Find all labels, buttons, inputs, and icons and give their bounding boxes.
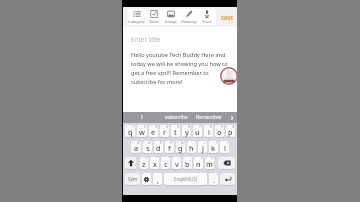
staticText: c xyxy=(164,159,168,169)
staticText: + xyxy=(204,141,206,145)
button[interactable]: Image xyxy=(162,9,180,25)
button[interactable]: English(US) xyxy=(164,173,207,185)
staticText: v xyxy=(175,159,179,169)
button[interactable]: 2 xyxy=(137,125,147,137)
staticText: " xyxy=(156,157,158,161)
button[interactable]: 4 xyxy=(160,125,169,137)
button[interactable]: $ xyxy=(154,141,163,153)
staticText: f xyxy=(168,143,171,153)
staticText: e xyxy=(151,127,156,137)
staticText: ) xyxy=(227,141,228,145)
staticText: Category xyxy=(128,19,145,24)
button[interactable]: Shift xyxy=(125,157,136,169)
button[interactable]: 9 xyxy=(215,125,224,137)
staticText: Enter title xyxy=(131,35,161,44)
staticText: d xyxy=(156,143,161,153)
staticText: p xyxy=(228,127,233,137)
staticText: Sym xyxy=(128,176,138,182)
staticText: Hello youtube Tech Buddy Here and today … xyxy=(131,51,234,86)
staticText: y xyxy=(185,127,189,137)
staticText: ! xyxy=(201,157,202,161)
staticText: : xyxy=(179,157,180,161)
staticText: . xyxy=(213,175,215,185)
staticText: r xyxy=(163,127,167,137)
button[interactable]: . xyxy=(209,173,218,185)
staticText: - xyxy=(193,141,195,145)
button[interactable]: Tasks xyxy=(145,9,162,25)
button[interactable]: I xyxy=(123,112,160,123)
staticText: Remember xyxy=(196,114,223,121)
staticText: # xyxy=(148,141,151,145)
button[interactable]: ( xyxy=(209,141,218,153)
button[interactable]: More suggestions xyxy=(226,112,237,123)
staticText: Image xyxy=(165,19,177,24)
button[interactable]: Category xyxy=(128,9,145,25)
button[interactable]: Enter xyxy=(220,173,235,185)
staticText: , xyxy=(157,175,159,185)
button[interactable]: SAVE xyxy=(216,9,238,25)
staticText: English(US) xyxy=(174,176,198,182)
button[interactable]: 5 xyxy=(171,125,180,137)
staticText: k xyxy=(211,143,216,153)
button[interactable]: ; xyxy=(183,157,192,169)
button[interactable]: 6 xyxy=(182,125,191,137)
button[interactable]: % xyxy=(165,141,174,153)
button[interactable]: 0 xyxy=(226,125,235,137)
staticText: h xyxy=(189,143,194,153)
button[interactable]: Settings xyxy=(142,173,151,185)
button[interactable]: + xyxy=(198,141,207,153)
button[interactable]: ) xyxy=(220,141,229,153)
staticText: w xyxy=(139,127,145,137)
button[interactable]: * xyxy=(140,157,148,169)
button[interactable]: @ xyxy=(131,141,141,153)
button[interactable]: subscribe xyxy=(160,112,193,123)
button[interactable]: Remember xyxy=(193,112,226,123)
staticText: 0 xyxy=(232,125,234,129)
button[interactable]: : xyxy=(172,157,181,169)
button[interactable]: 3 xyxy=(149,125,158,137)
staticText: l xyxy=(224,143,226,153)
staticText: Tasks xyxy=(149,19,159,24)
staticText: o xyxy=(217,127,222,137)
button[interactable]: ? xyxy=(205,157,214,169)
button[interactable]: & xyxy=(176,141,185,153)
staticText: q xyxy=(128,127,133,137)
staticText: m xyxy=(206,159,213,169)
staticText: ? xyxy=(211,157,213,161)
staticText: t xyxy=(174,127,177,137)
staticText: Drawing xyxy=(181,19,197,24)
button[interactable]: Sym xyxy=(125,173,140,185)
button[interactable]: Voice xyxy=(198,9,216,25)
staticText: u xyxy=(195,127,200,137)
staticText: SAVE xyxy=(221,14,234,21)
staticText: Voice xyxy=(202,19,212,24)
button[interactable]: # xyxy=(143,141,152,153)
staticText: 7 xyxy=(199,125,201,129)
button[interactable]: Drawing xyxy=(180,9,198,25)
button[interactable]: 8 xyxy=(204,125,213,137)
button[interactable]: 1 xyxy=(125,125,135,137)
staticText: ( xyxy=(216,141,217,145)
staticText: j xyxy=(202,143,204,153)
staticText: x xyxy=(153,159,157,169)
staticText: 2 xyxy=(144,125,146,129)
button[interactable]: - xyxy=(187,141,196,153)
button[interactable]: ! xyxy=(194,157,203,169)
staticText: $ xyxy=(160,141,162,145)
button[interactable]: 7 xyxy=(193,125,202,137)
staticText: 6 xyxy=(188,125,190,129)
staticText: 4 xyxy=(166,125,168,129)
button[interactable]: , xyxy=(153,173,162,185)
button[interactable]: Backspace xyxy=(218,157,235,169)
staticText: 8 xyxy=(210,125,212,129)
button[interactable]: " xyxy=(150,157,159,169)
button[interactable]: ' xyxy=(161,157,170,169)
staticText: n xyxy=(196,159,201,169)
staticText: a xyxy=(134,143,139,153)
staticText: z xyxy=(142,159,146,169)
staticText: i xyxy=(208,127,210,137)
staticText: ' xyxy=(168,157,169,161)
staticText: I xyxy=(141,114,143,121)
staticText: b xyxy=(185,159,190,169)
staticText: 5 xyxy=(177,125,179,129)
